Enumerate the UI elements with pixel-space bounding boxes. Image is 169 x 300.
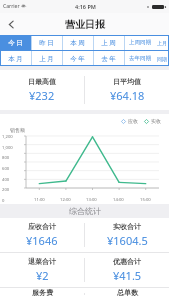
button[interactable]: 应收合计 xyxy=(0,218,84,252)
staticText: 应收合计 xyxy=(28,222,56,231)
staticText: 上周同期 xyxy=(129,39,151,46)
button[interactable]: 昨 日 xyxy=(31,35,62,50)
button[interactable]: 同期 xyxy=(155,51,169,66)
staticText: 去年同期 xyxy=(129,55,151,62)
button[interactable]: 日平均值 xyxy=(85,70,169,110)
staticText: 上 周 xyxy=(101,38,116,47)
staticText: 0 xyxy=(2,198,20,204)
staticText: 实收 xyxy=(151,118,161,124)
button[interactable]: 日最高值 xyxy=(0,70,84,110)
staticText: 15:00 xyxy=(140,197,151,203)
staticText: 销售额 xyxy=(10,127,25,133)
staticText: 去 年 xyxy=(101,54,116,63)
button[interactable]: 上 月 xyxy=(31,51,62,66)
staticText: ¥232 xyxy=(29,88,55,103)
staticText: 优惠合计 xyxy=(113,257,141,266)
staticText: 1,200 xyxy=(2,134,20,140)
staticText: 上月 xyxy=(157,40,167,46)
staticText: 11:00 xyxy=(34,197,45,203)
staticText: ¥41.5 xyxy=(113,268,142,283)
staticText: 200 xyxy=(2,187,20,193)
staticText: 今 年 xyxy=(70,54,85,63)
button[interactable]: 今 日 xyxy=(0,35,31,50)
staticText: 日平均值 xyxy=(113,77,141,86)
button[interactable]: 本 周 xyxy=(62,35,93,50)
button[interactable]: 去 年 xyxy=(93,51,124,66)
button[interactable]: 上周同期 xyxy=(124,35,155,50)
staticText: 昨 日 xyxy=(39,38,54,47)
staticText: 营业日报 xyxy=(65,18,105,31)
staticText: 14:00 xyxy=(113,197,124,203)
button[interactable]: 本 月 xyxy=(0,51,31,66)
staticText: 12:00 xyxy=(60,197,71,203)
staticText: ¥1646 xyxy=(26,233,58,248)
staticText: 应收 xyxy=(128,118,138,124)
button[interactable]: 今 年 xyxy=(62,51,93,66)
button[interactable]: 实收合计 xyxy=(85,218,169,252)
staticText: 今 日 xyxy=(8,38,23,47)
staticText: 400 xyxy=(2,177,20,183)
staticText: 退菜合计 xyxy=(28,257,56,266)
button[interactable]: 退菜合计 xyxy=(0,253,84,287)
staticText: 600 xyxy=(2,166,20,172)
staticText: 13:00 xyxy=(86,197,97,203)
button[interactable]: 总单数 xyxy=(85,288,169,300)
button[interactable]: Back xyxy=(2,15,20,33)
button[interactable]: 上月 xyxy=(155,35,169,50)
staticText: ¥2 xyxy=(36,268,49,283)
staticText: 1,000 xyxy=(2,145,20,151)
button[interactable]: 优惠合计 xyxy=(85,253,169,287)
staticText: 服务费 xyxy=(32,288,53,297)
staticText: 总单数 xyxy=(117,288,138,297)
staticText: 综合统计 xyxy=(69,206,101,216)
staticText: Carrier xyxy=(3,3,20,10)
staticText: ¥1604.5 xyxy=(107,233,148,248)
staticText: 本 月 xyxy=(8,54,23,63)
button[interactable]: 服务费 xyxy=(0,288,84,300)
staticText: 上 月 xyxy=(39,54,54,63)
staticText: ¥64.18 xyxy=(110,88,145,103)
button[interactable]: 上 周 xyxy=(93,35,124,50)
staticText: 4:16 PM xyxy=(75,3,96,10)
staticText: 本 周 xyxy=(70,38,85,47)
staticText: 日最高值 xyxy=(28,77,56,86)
button[interactable]: 去年同期 xyxy=(124,51,155,66)
staticText: 800 xyxy=(2,155,20,161)
staticText: 同期 xyxy=(157,56,167,62)
staticText: 实收合计 xyxy=(113,222,141,231)
